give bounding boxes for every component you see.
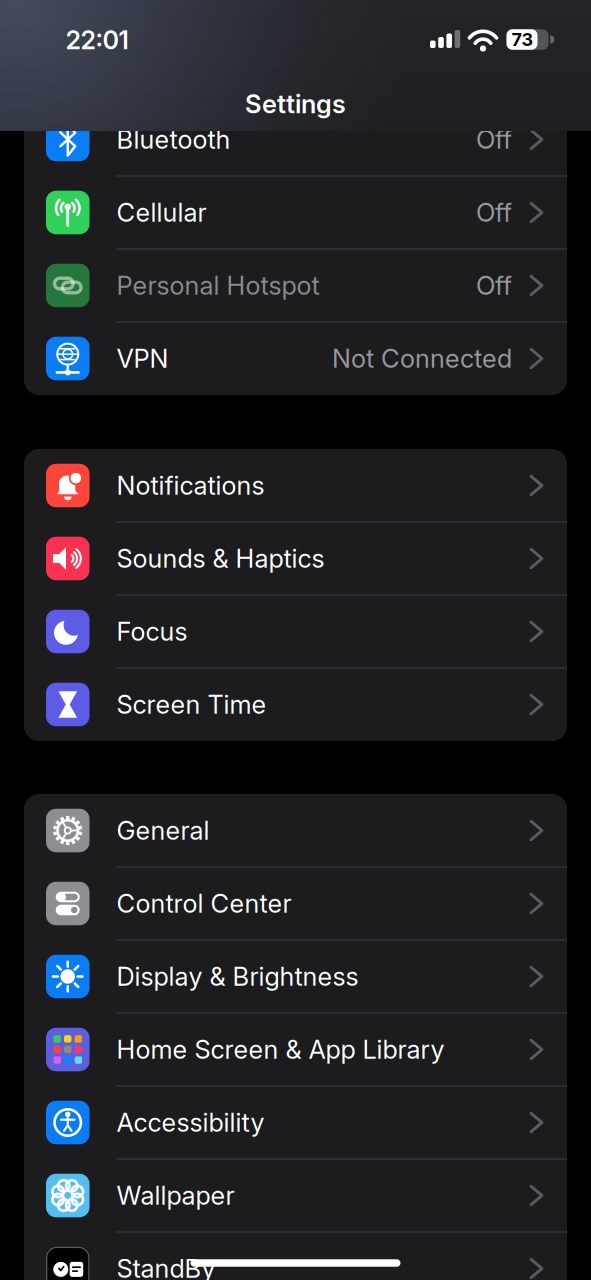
button[interactable]: Control Center — [24, 867, 567, 940]
staticText: Off — [476, 124, 512, 155]
button[interactable]: Screen Time — [24, 668, 567, 741]
staticText: Personal Hotspot — [116, 270, 319, 301]
staticText: 73 — [511, 29, 533, 50]
button[interactable]: Display & Brightness — [24, 940, 567, 1013]
staticText: Off — [476, 270, 512, 301]
button[interactable]: Home Screen & App Library — [24, 1013, 567, 1086]
staticText: Wallpaper — [116, 1180, 234, 1211]
staticText: Sounds & Haptics — [116, 543, 324, 574]
staticText: Off — [476, 197, 512, 228]
button[interactable]: VPN — [24, 322, 567, 395]
staticText: VPN — [116, 343, 168, 374]
staticText: 22:01 — [65, 25, 128, 55]
button[interactable]: Notifications — [24, 449, 567, 522]
staticText: StandBy — [116, 1253, 215, 1280]
button[interactable]: Personal Hotspot — [24, 249, 567, 322]
button[interactable]: Cellular — [24, 176, 567, 249]
staticText: Home Screen & App Library — [116, 1034, 444, 1065]
staticText: Settings — [245, 89, 346, 119]
button[interactable]: Accessibility — [24, 1086, 567, 1159]
staticText: Cellular — [116, 197, 206, 228]
staticText: Notifications — [116, 470, 264, 501]
button[interactable]: StandBy — [24, 1232, 567, 1280]
staticText: Not Connected — [332, 343, 512, 374]
button[interactable]: Bluetooth — [24, 103, 567, 176]
staticText: Focus — [116, 616, 187, 647]
staticText: Display & Brightness — [116, 961, 358, 992]
button[interactable]: Sounds & Haptics — [24, 522, 567, 595]
staticText: General — [116, 815, 209, 846]
staticText: Control Center — [116, 888, 291, 919]
staticText: Screen Time — [116, 689, 266, 720]
button[interactable]: Focus — [24, 595, 567, 668]
staticText: Accessibility — [116, 1107, 264, 1138]
button[interactable]: Wallpaper — [24, 1159, 567, 1232]
staticText: Bluetooth — [116, 124, 230, 155]
button[interactable]: General — [24, 794, 567, 867]
